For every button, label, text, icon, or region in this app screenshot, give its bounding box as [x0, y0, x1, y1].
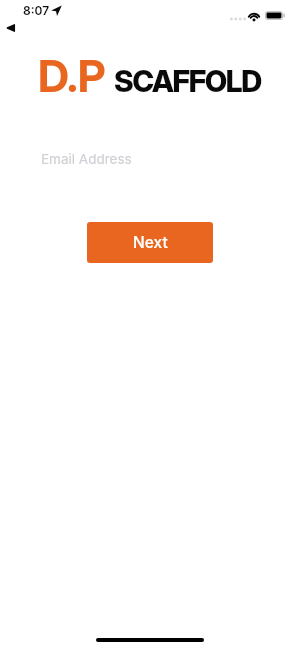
button[interactable]: Next: [87, 222, 213, 263]
button[interactable]: Email Address: [0, 141, 300, 177]
staticText: 8:07: [23, 3, 50, 18]
staticText: SCAFFOLD: [114, 63, 261, 99]
button[interactable]: Back: [0, 16, 23, 40]
staticText: Email Address: [41, 151, 132, 167]
staticText: D.P: [38, 49, 106, 102]
staticText: Next: [133, 233, 168, 252]
